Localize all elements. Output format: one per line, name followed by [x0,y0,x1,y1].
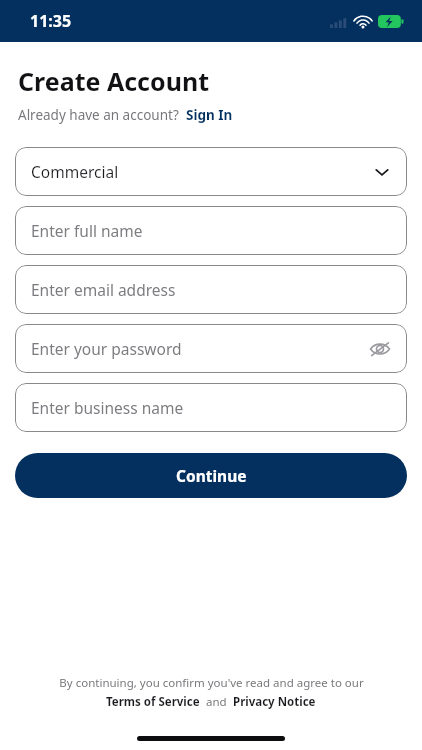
staticText: Enter business name [31,397,391,418]
button[interactable]: Terms of Service [106,694,200,710]
staticText: By continuing, you confirm you've read a… [59,675,364,691]
staticText: Terms of Service [106,694,200,710]
other: Show password [369,338,391,360]
staticText: Enter full name [31,220,391,241]
staticText: Commercial [31,161,373,182]
button[interactable]: Commercial [15,147,407,196]
staticText: Already have an account? [18,106,179,124]
staticText: Sign In [186,106,233,124]
button[interactable]: Privacy Notice [233,694,316,710]
staticText: and [200,694,233,710]
staticText: Enter your password [31,338,369,359]
staticText: 11:35 [30,10,72,32]
button[interactable]: Enter your password [15,324,407,373]
staticText: Create Account [18,64,209,98]
button[interactable]: Enter email address [15,265,407,314]
staticText: Enter email address [31,279,391,300]
button[interactable]: Enter business name [15,383,407,432]
staticText: Privacy Notice [233,694,316,710]
button[interactable]: Sign In [186,106,233,124]
button[interactable]: Enter full name [15,206,407,255]
button[interactable]: Continue [15,453,407,498]
staticText: Continue [176,465,247,486]
